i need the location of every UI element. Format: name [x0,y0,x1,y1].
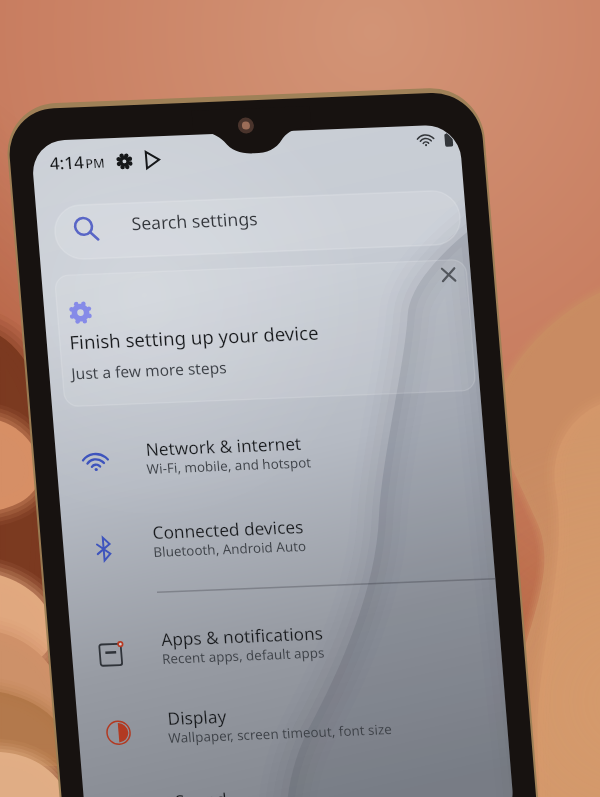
button[interactable] [0,612,480,691]
button[interactable] [0,422,468,505]
button[interactable] [0,691,480,770]
button[interactable] [0,505,468,588]
button[interactable]: Search settings [0,195,456,261]
button[interactable] [0,275,456,392]
